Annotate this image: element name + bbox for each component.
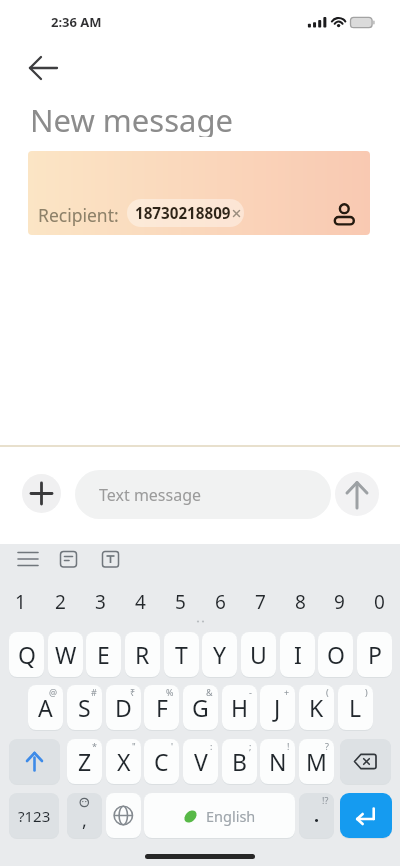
staticText: D [115, 692, 132, 723]
staticText: 6 [215, 589, 226, 615]
staticText: L [349, 692, 362, 723]
staticText: H [231, 692, 249, 723]
button[interactable]: U [241, 632, 276, 677]
button[interactable]: X [106, 739, 141, 784]
button[interactable]: K [299, 685, 334, 730]
staticText: Q [18, 639, 36, 670]
staticText: P [368, 639, 382, 670]
staticText: Y [213, 639, 227, 670]
staticText: , [82, 808, 87, 833]
button[interactable]: J [260, 685, 295, 730]
button[interactable]: 7 [240, 587, 280, 617]
button[interactable]: 0 [359, 587, 399, 617]
staticText: 2:36 AM [51, 13, 102, 29]
staticText: S [78, 692, 91, 723]
button[interactable]: C [144, 739, 179, 784]
button[interactable] [340, 739, 391, 784]
staticText: ?123 [18, 806, 51, 826]
button[interactable]: 2 [40, 587, 80, 617]
staticText: X [117, 746, 131, 777]
staticText: W [55, 639, 77, 670]
button[interactable]: 4 [120, 587, 160, 617]
button[interactable]: L [338, 685, 373, 730]
button[interactable]: ?123 [9, 793, 59, 838]
button[interactable]: . [299, 793, 334, 838]
button[interactable]: T [164, 632, 199, 677]
button[interactable] [330, 196, 360, 230]
staticText: . [314, 803, 320, 828]
button[interactable]: Q [9, 632, 44, 677]
button[interactable]: S [67, 685, 102, 730]
button[interactable]: W [48, 632, 83, 677]
staticText: F [156, 692, 168, 723]
staticText: 8 [295, 589, 306, 615]
button[interactable]: Z [67, 739, 102, 784]
staticText: U [250, 639, 267, 670]
button[interactable]: N [260, 739, 295, 784]
staticText: ( [326, 686, 329, 698]
staticText: !? [322, 794, 329, 806]
staticText: V [194, 746, 208, 777]
staticText: + [284, 686, 290, 698]
button[interactable]: 8 [280, 587, 320, 617]
button[interactable]: G [183, 685, 218, 730]
button[interactable]: 6 [200, 587, 240, 617]
button[interactable]: 3 [80, 587, 120, 617]
button[interactable]: V [183, 739, 218, 784]
button[interactable] [56, 548, 84, 572]
button[interactable] [26, 54, 62, 82]
staticText: Text message [99, 484, 202, 506]
staticText: ₹ [130, 686, 136, 698]
staticText: - [249, 686, 252, 698]
staticText: K [309, 692, 324, 723]
staticText: % [166, 686, 174, 698]
staticText: ? [325, 740, 329, 752]
button[interactable] [22, 474, 61, 513]
button[interactable] [340, 793, 392, 838]
staticText: ! [287, 740, 290, 752]
button[interactable]: I [280, 632, 315, 677]
button[interactable] [9, 739, 60, 784]
button[interactable] [335, 472, 379, 516]
staticText: : [210, 740, 213, 752]
staticText: E [97, 639, 110, 670]
staticText: 0 [374, 589, 385, 615]
staticText: Recipient: [38, 203, 119, 227]
staticText: # [91, 686, 97, 698]
button[interactable]: 5 [160, 587, 200, 617]
button[interactable]: 1 [0, 587, 40, 617]
button[interactable]: A [28, 685, 63, 730]
button[interactable]: R [125, 632, 160, 677]
staticText: A [38, 692, 53, 723]
button[interactable] [106, 793, 141, 838]
staticText: N [269, 746, 287, 777]
button[interactable] [14, 548, 42, 572]
staticText: 5 [175, 589, 186, 615]
button[interactable]: D [106, 685, 141, 730]
button[interactable]: P [357, 632, 392, 677]
staticText: New message [30, 99, 233, 137]
staticText: 7 [255, 589, 266, 615]
button[interactable]: English [144, 793, 295, 838]
staticText: " [132, 740, 136, 752]
staticText: I [294, 639, 302, 670]
staticText: @ [49, 686, 58, 698]
staticText: Z [78, 746, 92, 777]
button[interactable] [98, 548, 126, 572]
staticText: J [274, 692, 281, 723]
button[interactable]: 9 [319, 587, 359, 617]
button[interactable]: M [299, 739, 334, 784]
button[interactable]: , [67, 793, 102, 838]
staticText: C [154, 746, 169, 777]
button[interactable]: F [144, 685, 179, 730]
button[interactable]: E [86, 632, 121, 677]
button[interactable]: H [222, 685, 257, 730]
staticText: M [306, 746, 327, 777]
button[interactable]: Text message [75, 470, 331, 519]
button[interactable]: O [318, 632, 353, 677]
button[interactable]: B [222, 739, 257, 784]
staticText: G [192, 692, 209, 723]
staticText: 4 [135, 589, 146, 615]
staticText: 2 [55, 589, 66, 615]
button[interactable]: Y [202, 632, 237, 677]
